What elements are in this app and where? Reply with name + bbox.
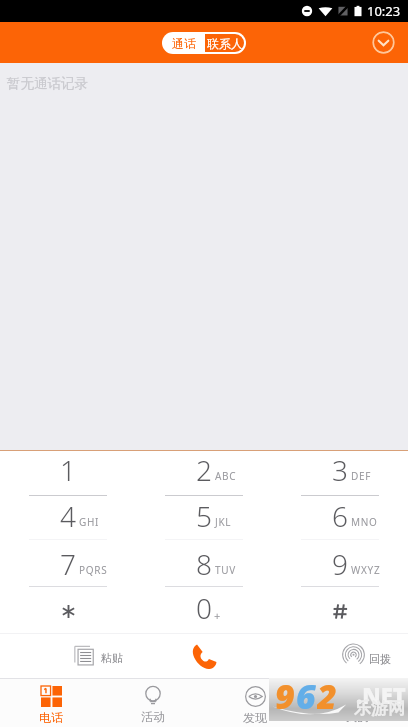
staticText: 4 <box>60 497 76 535</box>
staticText: 1 <box>60 451 76 489</box>
staticText: + <box>214 608 221 623</box>
button[interactable]: 发现 <box>204 679 306 727</box>
staticText: 联系人 <box>207 36 243 51</box>
button[interactable]: 回拨 <box>342 633 391 678</box>
staticText: 2 <box>196 451 212 489</box>
button[interactable]: 2 <box>136 451 272 496</box>
button[interactable]: 8 <box>136 540 272 587</box>
staticText: 通话 <box>172 36 196 51</box>
staticText: 8 <box>196 545 212 583</box>
staticText: 3 <box>332 451 348 489</box>
button[interactable]: 1 <box>0 451 136 496</box>
staticText: 7 <box>60 545 76 583</box>
button[interactable]: 我的 <box>306 679 408 727</box>
button[interactable]: 5 <box>136 496 272 540</box>
staticText: 乐游网 <box>354 698 405 719</box>
staticText: 5 <box>196 497 212 535</box>
button[interactable]: 7 <box>0 540 136 587</box>
staticText: 我的 <box>345 709 369 724</box>
button[interactable]: 9 <box>272 540 408 587</box>
button[interactable]: Expand <box>372 31 395 54</box>
staticText: DEF <box>351 469 372 483</box>
button[interactable]: 粘贴 <box>73 633 123 678</box>
staticText: 粘贴 <box>101 651 123 665</box>
staticText: 0 <box>196 589 212 627</box>
button[interactable]: 通话 <box>162 32 205 54</box>
button[interactable] <box>272 587 408 633</box>
button[interactable]: 4 <box>0 496 136 540</box>
button[interactable]: 6 <box>272 496 408 540</box>
staticText: 9 <box>275 673 296 716</box>
staticText: 6 <box>332 497 348 535</box>
staticText: .NET <box>356 680 406 710</box>
staticText: 回拨 <box>369 652 391 666</box>
staticText: MNO <box>351 515 378 529</box>
staticText: 2 <box>317 673 338 716</box>
staticText: 10:23 <box>367 2 401 20</box>
staticText: 9 <box>332 545 348 583</box>
staticText: 6 <box>296 673 317 716</box>
staticText: 发现 <box>243 710 267 725</box>
staticText: GHI <box>79 515 100 529</box>
staticText: PQRS <box>79 563 108 577</box>
button[interactable] <box>0 587 136 633</box>
button[interactable]: 电话 <box>0 679 102 727</box>
button[interactable]: Call <box>190 643 217 670</box>
button[interactable]: 0 <box>136 587 272 633</box>
button[interactable]: 活动 <box>102 679 204 727</box>
staticText: JKL <box>215 515 232 529</box>
staticText: 活动 <box>141 709 165 724</box>
staticText: WXYZ <box>351 563 381 577</box>
staticText: ABC <box>215 469 237 483</box>
button[interactable]: 3 <box>272 451 408 496</box>
button[interactable]: 联系人 <box>205 34 244 52</box>
staticText: 暂无通话记录 <box>7 75 88 92</box>
staticText: 电话 <box>39 710 63 725</box>
staticText: TUV <box>215 563 236 577</box>
